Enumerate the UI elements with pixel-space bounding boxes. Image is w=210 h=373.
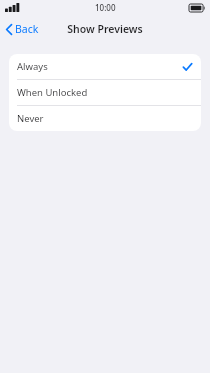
staticText: Always: [17, 60, 48, 73]
button[interactable]: Always: [9, 54, 201, 80]
staticText: Never: [17, 112, 44, 125]
button[interactable]: Back: [0, 18, 47, 40]
button[interactable]: When Unlocked: [9, 80, 201, 106]
staticText: 10:00: [95, 2, 116, 13]
staticText: Back: [15, 22, 39, 36]
staticText: Show Previews: [67, 22, 143, 36]
staticText: When Unlocked: [17, 86, 88, 99]
button[interactable]: Never: [9, 106, 201, 131]
other: Selected: [183, 63, 192, 71]
